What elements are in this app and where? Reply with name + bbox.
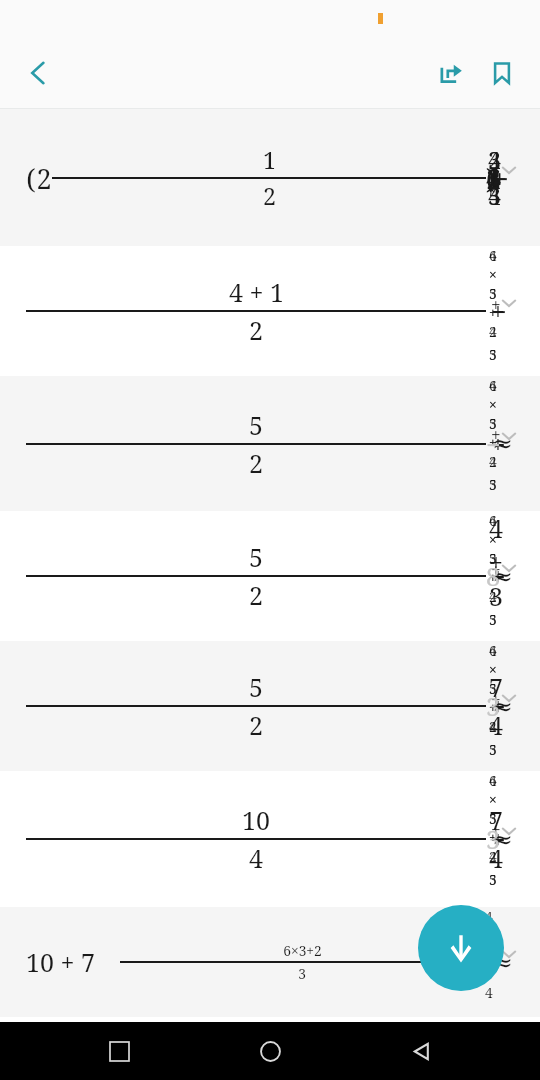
button[interactable]: 4 + 1: [0, 246, 540, 376]
button[interactable]: Scroll to bottom: [418, 905, 504, 991]
button[interactable]: Expand step: [494, 683, 524, 713]
staticText: 2: [249, 578, 263, 612]
button[interactable]: Expand step: [494, 553, 524, 583]
button[interactable]: Back: [398, 1028, 444, 1074]
button[interactable]: Back: [12, 47, 64, 99]
staticText: 10 + 7: [26, 945, 95, 979]
staticText: 3: [298, 964, 306, 983]
button[interactable]: Share: [424, 47, 476, 99]
staticText: 2: [36, 160, 52, 197]
button[interactable]: Expand step: [494, 939, 524, 969]
button[interactable]: 5: [0, 641, 540, 771]
staticText: 4 + 1: [229, 275, 284, 309]
button[interactable]: 5: [0, 511, 540, 641]
button[interactable]: 10 + 7: [0, 907, 540, 1017]
staticText: 5: [249, 408, 263, 442]
staticText: 6×3+2: [283, 941, 322, 960]
staticText: 5: [249, 540, 263, 574]
staticText: 4: [249, 841, 263, 875]
button[interactable]: (: [0, 109, 540, 246]
button[interactable]: 5: [0, 376, 540, 511]
staticText: 2: [249, 313, 263, 347]
button[interactable]: Bookmark: [476, 47, 528, 99]
staticText: 5: [249, 670, 263, 704]
staticText: (: [26, 160, 36, 197]
button[interactable]: Expand step: [494, 288, 524, 318]
staticText: 2: [249, 446, 263, 480]
staticText: 2: [263, 180, 276, 212]
button[interactable]: Expand step: [494, 816, 524, 846]
button[interactable]: Recents: [96, 1028, 142, 1074]
button[interactable]: Expand step: [494, 421, 524, 451]
button[interactable]: Expand step: [494, 155, 524, 185]
button[interactable]: 10: [0, 771, 540, 907]
staticText: 2: [249, 708, 263, 742]
button[interactable]: Home: [247, 1028, 293, 1074]
staticText: 10: [242, 803, 270, 837]
staticText: 1: [263, 144, 276, 176]
